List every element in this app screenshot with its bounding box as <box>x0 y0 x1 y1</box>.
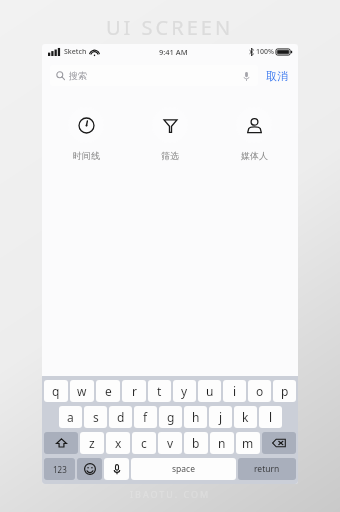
staticText: u <box>206 383 214 399</box>
button[interactable]: Voice search <box>240 70 252 82</box>
other: Media person <box>246 117 263 134</box>
staticText: q <box>52 383 60 399</box>
button[interactable]: Media person <box>234 105 274 163</box>
button[interactable]: e <box>96 380 120 402</box>
other: Emoji <box>84 463 96 475</box>
staticText: return <box>254 463 280 475</box>
button[interactable]: s <box>84 406 107 428</box>
button[interactable]: o <box>248 380 271 402</box>
button[interactable]: 123 <box>44 458 75 480</box>
other: Backspace <box>272 438 286 448</box>
staticText: f <box>143 409 148 425</box>
staticText: t <box>157 383 162 399</box>
staticText: n <box>218 435 226 451</box>
staticText: i <box>233 383 237 399</box>
button[interactable]: space <box>131 458 236 480</box>
other: Filter <box>162 117 179 134</box>
staticText: Sketch <box>64 47 87 57</box>
staticText: h <box>192 409 200 425</box>
button[interactable]: f <box>134 406 157 428</box>
button[interactable]: v <box>158 432 182 454</box>
button[interactable]: k <box>234 406 257 428</box>
button[interactable]: Dictation <box>104 458 129 480</box>
staticText: 取消 <box>266 69 288 83</box>
other: Shift <box>56 438 67 449</box>
staticText: v <box>167 435 174 451</box>
staticText: k <box>242 409 249 425</box>
button[interactable]: j <box>209 406 232 428</box>
staticText: 9:41 AM <box>159 47 188 57</box>
button[interactable]: g <box>159 406 182 428</box>
button[interactable]: i <box>223 380 246 402</box>
button[interactable]: Emoji <box>77 458 102 480</box>
button[interactable]: Filter <box>150 105 190 163</box>
button[interactable]: return <box>238 458 296 480</box>
button[interactable]: m <box>236 432 260 454</box>
button[interactable]: r <box>122 380 146 402</box>
button[interactable]: x <box>106 432 130 454</box>
button[interactable]: q <box>44 380 68 402</box>
staticText: space <box>172 463 195 475</box>
button[interactable]: y <box>173 380 196 402</box>
staticText: s <box>93 409 99 425</box>
staticText: 时间线 <box>73 150 100 161</box>
button[interactable]: z <box>80 432 104 454</box>
staticText: g <box>167 409 175 425</box>
button[interactable]: u <box>198 380 221 402</box>
staticText: m <box>242 435 254 451</box>
staticText: b <box>192 435 200 451</box>
staticText: z <box>89 435 95 451</box>
button[interactable]: Shift <box>44 432 78 454</box>
button[interactable]: h <box>184 406 207 428</box>
staticText: l <box>269 409 273 425</box>
button[interactable]: 搜索 <box>50 65 258 86</box>
button[interactable]: p <box>273 380 296 402</box>
staticText: 123 <box>53 464 67 475</box>
staticText: w <box>77 383 87 399</box>
button[interactable]: Timeline <box>66 105 106 163</box>
staticText: a <box>67 409 74 425</box>
other: Timeline <box>78 117 95 134</box>
staticText: x <box>115 435 122 451</box>
staticText: UI SCREEN <box>106 14 234 41</box>
staticText: 搜索 <box>69 70 87 81</box>
button[interactable]: Backspace <box>262 432 296 454</box>
staticText: d <box>117 409 125 425</box>
button[interactable]: 取消 <box>264 67 290 85</box>
staticText: p <box>281 383 289 399</box>
staticText: y <box>181 383 188 399</box>
button[interactable]: n <box>210 432 234 454</box>
staticText: o <box>256 383 264 399</box>
staticText: e <box>105 383 112 399</box>
button[interactable]: t <box>148 380 171 402</box>
staticText: j <box>219 409 223 425</box>
button[interactable]: b <box>184 432 208 454</box>
staticText: c <box>141 435 147 451</box>
button[interactable]: w <box>70 380 94 402</box>
staticText: 筛选 <box>161 150 179 161</box>
button[interactable]: l <box>259 406 282 428</box>
button[interactable]: a <box>59 406 82 428</box>
button[interactable]: d <box>109 406 132 428</box>
staticText: 100% <box>256 47 274 57</box>
staticText: r <box>132 383 137 399</box>
button[interactable]: c <box>132 432 156 454</box>
staticText: 媒体人 <box>241 150 268 161</box>
